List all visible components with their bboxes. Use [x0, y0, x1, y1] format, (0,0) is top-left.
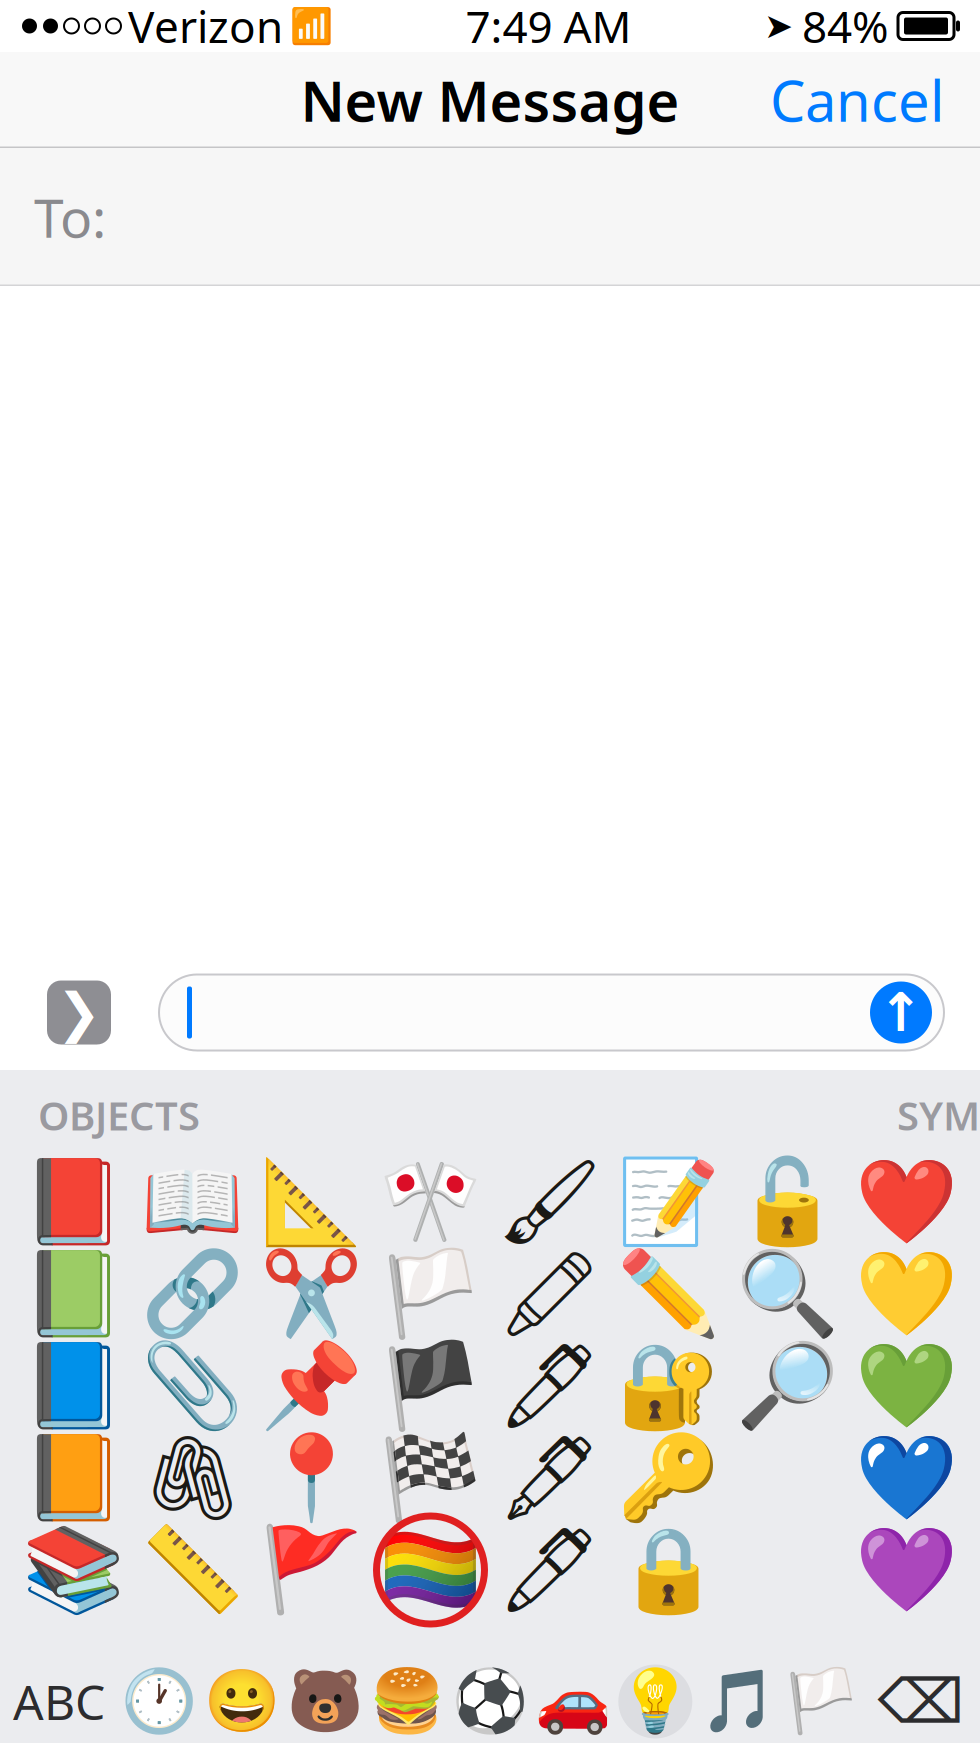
button[interactable]: Emoji [14, 1248, 133, 1340]
button[interactable]: Show more apps [47, 980, 111, 1044]
staticText: 🎵 [700, 1666, 776, 1737]
button[interactable]: Emoji category [531, 1660, 614, 1743]
button[interactable]: Emoji [609, 1340, 728, 1432]
staticText: ⌫ [877, 1667, 964, 1736]
staticText: 🔐 [617, 1339, 720, 1433]
staticText: 📗 [22, 1247, 125, 1341]
staticText: ⚽️ [452, 1666, 528, 1737]
button[interactable]: Emoji [133, 1248, 252, 1340]
button[interactable]: Send [870, 981, 932, 1043]
staticText: 📍 [260, 1431, 363, 1525]
button[interactable]: Emoji category [779, 1660, 862, 1743]
button[interactable]: Emoji [371, 1524, 490, 1616]
staticText: 🔓 [736, 1155, 839, 1249]
staticText: 📌 [260, 1339, 363, 1433]
button[interactable]: Emoji [133, 1156, 252, 1248]
button[interactable]: Emoji [133, 1340, 252, 1432]
staticText: OBJECTS [38, 1088, 200, 1141]
button[interactable]: Emoji [847, 1248, 966, 1340]
staticText: 🏳️ [783, 1666, 859, 1737]
button[interactable]: Emoji [252, 1156, 371, 1248]
staticText: 🖌 [497, 1155, 602, 1249]
button[interactable]: Delete [862, 1660, 980, 1743]
staticText: 🎌 [379, 1155, 482, 1249]
staticText: 🍔 [369, 1666, 445, 1737]
staticText: 🔗 [141, 1247, 244, 1341]
button[interactable]: Emoji [490, 1524, 609, 1616]
button[interactable]: Emoji [371, 1156, 490, 1248]
button[interactable]: To: [0, 148, 980, 286]
button[interactable]: Emoji [490, 1432, 609, 1524]
button[interactable]: Emoji [252, 1432, 371, 1524]
staticText: 📶 [290, 6, 333, 46]
staticText: 📚 [22, 1523, 125, 1617]
button[interactable]: Emoji [371, 1248, 490, 1340]
button[interactable]: Emoji [847, 1524, 966, 1616]
button[interactable]: Emoji [371, 1340, 490, 1432]
staticText: 📎 [141, 1339, 244, 1433]
button[interactable]: Emoji [14, 1524, 133, 1616]
button[interactable]: Emoji [252, 1248, 371, 1340]
staticText: 🖋 [497, 1431, 602, 1525]
button[interactable]: Emoji [371, 1432, 490, 1524]
button[interactable]: Emoji [14, 1156, 133, 1248]
staticText: 📏 [141, 1523, 244, 1617]
button[interactable]: Emoji [609, 1248, 728, 1340]
staticText: 🔒 [617, 1523, 720, 1617]
button[interactable]: Emoji [252, 1340, 371, 1432]
staticText: 💡 [617, 1666, 693, 1737]
staticText: 📖 [141, 1155, 244, 1249]
staticText: 🖇 [140, 1431, 245, 1525]
button[interactable]: Emoji [609, 1524, 728, 1616]
button[interactable]: Emoji [133, 1524, 252, 1616]
button[interactable]: Emoji category [449, 1660, 531, 1743]
staticText: 😀 [204, 1666, 280, 1737]
staticText: 🏳️‍🌈 [379, 1523, 482, 1617]
button[interactable]: Emoji [490, 1340, 609, 1432]
staticText: 🖍 [497, 1247, 602, 1341]
button[interactable]: Emoji [728, 1248, 847, 1340]
staticText: 💛 [855, 1247, 958, 1341]
button[interactable]: Emoji [252, 1524, 371, 1616]
button[interactable]: Emoji [609, 1432, 728, 1524]
staticText: 84% [802, 0, 889, 55]
button[interactable]: Emoji [609, 1156, 728, 1248]
button[interactable]: Emoji [490, 1248, 609, 1340]
button[interactable]: Emoji [490, 1156, 609, 1248]
staticText: 📘 [22, 1339, 125, 1433]
staticText: Cancel [770, 63, 944, 137]
staticText: 🏁 [379, 1431, 482, 1525]
button[interactable]: Emoji [847, 1432, 966, 1524]
staticText: Verizon [128, 0, 283, 55]
staticText: 🚗 [535, 1666, 611, 1737]
button[interactable]: Emoji category [283, 1660, 366, 1743]
staticText: 🕐 [121, 1666, 197, 1737]
staticText: 🐻 [287, 1666, 363, 1737]
staticText: 🏴 [379, 1339, 482, 1433]
staticText: 🔎 [736, 1339, 839, 1433]
button[interactable]: Emoji [847, 1156, 966, 1248]
button[interactable]: Emoji [728, 1340, 847, 1432]
button[interactable]: Emoji category [366, 1660, 449, 1743]
staticText: 🏳️ [379, 1247, 482, 1341]
staticText: 💜 [855, 1523, 958, 1617]
button[interactable]: Emoji category [614, 1660, 697, 1743]
button[interactable]: ABC [0, 1660, 118, 1743]
button[interactable]: Emoji [133, 1432, 252, 1524]
button[interactable]: Emoji [847, 1340, 966, 1432]
button[interactable]: Emoji [728, 1156, 847, 1248]
button[interactable]: Emoji category [201, 1660, 283, 1743]
staticText: New Message [300, 63, 679, 137]
staticText: ✂️ [260, 1247, 363, 1341]
staticText: 📙 [22, 1431, 125, 1525]
button[interactable]: Emoji category [697, 1660, 779, 1743]
button[interactable]: Emoji [14, 1340, 133, 1432]
button[interactable]: Cancel [748, 49, 966, 151]
button[interactable]: Emoji [14, 1432, 133, 1524]
staticText: 🔍 [736, 1247, 839, 1341]
button[interactable]: Emoji category [118, 1660, 201, 1743]
staticText: 🖊 [497, 1339, 602, 1433]
staticText: To: [34, 182, 106, 252]
